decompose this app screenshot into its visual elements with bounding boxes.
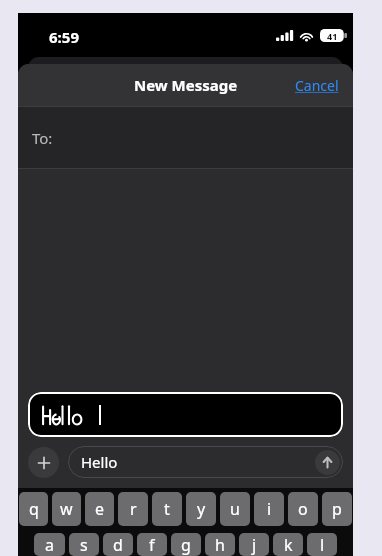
- button[interactable]: i: [254, 492, 284, 526]
- button[interactable]: g: [171, 533, 201, 556]
- button[interactable]: Send: [315, 450, 340, 475]
- button[interactable]: q: [19, 492, 48, 526]
- button[interactable]: p: [322, 492, 352, 526]
- button[interactable]: k: [273, 533, 303, 556]
- staticText: 6:59: [49, 27, 79, 47]
- button[interactable]: t: [152, 492, 182, 526]
- button[interactable]: Hello: [68, 446, 343, 478]
- staticText: To:: [32, 128, 53, 148]
- button[interactable]: u: [220, 492, 250, 526]
- staticText: s: [80, 534, 88, 556]
- button[interactable]: [28, 392, 343, 437]
- button[interactable]: w: [52, 492, 81, 526]
- button[interactable]: To:: [18, 107, 353, 168]
- staticText: q: [29, 498, 39, 520]
- staticText: l: [320, 534, 325, 556]
- staticText: y: [197, 498, 206, 520]
- staticText: r: [130, 498, 137, 520]
- button[interactable]: e: [85, 492, 114, 526]
- staticText: g: [181, 534, 191, 556]
- staticText: p: [332, 498, 342, 520]
- staticText: u: [230, 498, 240, 520]
- staticText: Cancel: [295, 76, 339, 95]
- button[interactable]: j: [239, 533, 269, 556]
- staticText: o: [298, 498, 308, 520]
- staticText: a: [45, 534, 54, 556]
- staticText: h: [215, 534, 225, 556]
- staticText: k: [284, 534, 293, 556]
- staticText: i: [267, 498, 272, 520]
- button[interactable]: f: [137, 533, 167, 556]
- staticText: Hello: [81, 452, 118, 472]
- button[interactable]: y: [186, 492, 216, 526]
- button[interactable]: Add attachment: [28, 447, 59, 478]
- staticText: f: [149, 534, 155, 556]
- staticText: d: [113, 534, 123, 556]
- staticText: e: [95, 498, 105, 520]
- button[interactable]: d: [103, 533, 133, 556]
- staticText: 41: [327, 30, 338, 42]
- staticText: New Message: [134, 75, 238, 95]
- button[interactable]: a: [34, 533, 65, 556]
- staticText: j: [252, 534, 257, 556]
- button[interactable]: l: [307, 533, 337, 556]
- button[interactable]: r: [118, 492, 148, 526]
- button[interactable]: h: [205, 533, 235, 556]
- button[interactable]: Cancel: [291, 70, 343, 101]
- staticText: t: [164, 498, 170, 520]
- button[interactable]: s: [69, 533, 99, 556]
- staticText: w: [60, 498, 73, 520]
- button[interactable]: o: [288, 492, 318, 526]
